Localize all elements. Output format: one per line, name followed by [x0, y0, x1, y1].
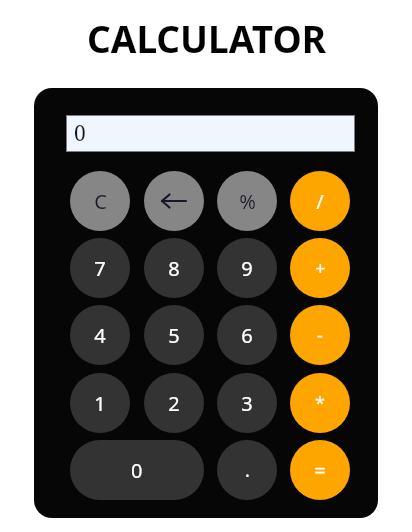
button[interactable]: Backspace — [144, 171, 204, 231]
staticText: 1 — [94, 390, 106, 417]
button[interactable]: 2 — [144, 373, 204, 433]
button[interactable]: + — [290, 238, 350, 298]
button[interactable]: 7 — [70, 238, 130, 298]
staticText: C — [94, 188, 107, 215]
staticText: 7 — [94, 255, 106, 282]
button[interactable]: 0 — [66, 115, 355, 152]
staticText: 0 — [131, 457, 143, 484]
staticText: CALCULATOR — [87, 13, 326, 63]
staticText: * — [315, 391, 325, 416]
staticText: + — [315, 256, 326, 281]
staticText: % — [239, 188, 256, 215]
staticText: 5 — [168, 322, 180, 349]
staticText: 6 — [241, 322, 253, 349]
staticText: 9 — [241, 255, 253, 282]
button[interactable]: 4 — [70, 305, 130, 365]
button[interactable]: C — [70, 171, 130, 231]
button[interactable]: = — [290, 440, 350, 500]
button[interactable]: 3 — [217, 373, 277, 433]
button[interactable]: / — [290, 171, 350, 231]
button[interactable]: 5 — [144, 305, 204, 365]
button[interactable]: 1 — [70, 373, 130, 433]
button[interactable]: * — [290, 373, 350, 433]
staticText: 8 — [168, 255, 180, 282]
staticText: 3 — [241, 390, 253, 417]
staticText: . — [245, 458, 250, 483]
button[interactable]: . — [217, 440, 277, 500]
staticText: = — [314, 457, 326, 484]
button[interactable]: 6 — [217, 305, 277, 365]
staticText: 2 — [168, 390, 180, 417]
staticText: - — [317, 323, 323, 348]
staticText: 4 — [94, 322, 106, 349]
button[interactable]: % — [217, 171, 277, 231]
button[interactable]: 9 — [217, 238, 277, 298]
staticText: / — [316, 188, 324, 215]
button[interactable]: 8 — [144, 238, 204, 298]
button[interactable]: 0 — [70, 440, 204, 500]
button[interactable]: - — [290, 305, 350, 365]
staticText: 0 — [74, 119, 86, 148]
